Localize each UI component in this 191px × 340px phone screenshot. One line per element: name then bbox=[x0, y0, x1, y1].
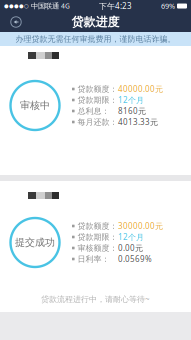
staticText: 下午4:23 bbox=[99, 1, 132, 11]
staticText: 12个月 bbox=[118, 232, 144, 242]
staticText: 日利率： bbox=[77, 254, 109, 264]
staticText: 每月还款： bbox=[77, 117, 117, 127]
staticText: ●●●●○ bbox=[4, 3, 29, 9]
staticText: 40000.00元 bbox=[118, 84, 163, 94]
staticText: 0.00元 bbox=[118, 243, 143, 253]
staticText: 贷款期限： bbox=[77, 95, 117, 105]
staticText: 0.0569% bbox=[118, 254, 152, 264]
staticText: 贷款额度： bbox=[77, 84, 117, 94]
button[interactable]: 返回 bbox=[0, 12, 27, 32]
staticText: 4G bbox=[61, 1, 70, 11]
staticText: 8160元 bbox=[118, 106, 146, 116]
staticText: 贷款进度 bbox=[71, 14, 119, 29]
staticText: 提交成功 bbox=[15, 236, 55, 249]
staticText: 12个月 bbox=[118, 95, 144, 105]
button[interactable]: 提交成功 bbox=[0, 181, 191, 286]
staticText: 贷款额度： bbox=[77, 221, 117, 231]
staticText: 贷款期限： bbox=[77, 232, 117, 242]
staticText: 69% bbox=[161, 1, 175, 11]
staticText: 审核额度： bbox=[77, 243, 117, 253]
staticText: 30000.00元 bbox=[118, 221, 163, 231]
staticText: 审核中 bbox=[20, 99, 50, 112]
staticText: 总利息： bbox=[77, 106, 109, 116]
button[interactable]: 审核中 bbox=[0, 46, 191, 175]
staticText: 办理贷款无需任何审批费用，谨防电话诈骗。 bbox=[15, 34, 175, 44]
staticText: 4013.33元 bbox=[118, 117, 158, 127]
staticText: 中国联通 bbox=[29, 1, 61, 11]
staticText: 贷款流程进行中，请耐心等待~ bbox=[41, 294, 150, 304]
